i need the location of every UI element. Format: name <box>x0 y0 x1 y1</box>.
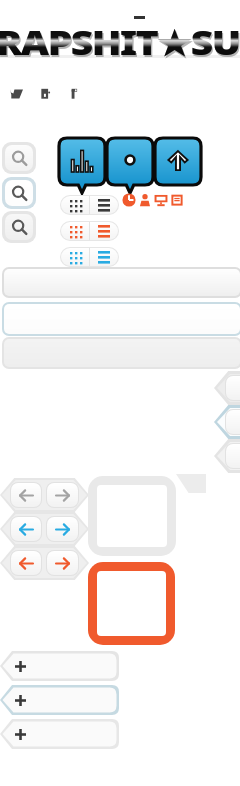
button[interactable]: Upload <box>155 138 201 193</box>
button[interactable]: Text field <box>4 269 240 296</box>
button[interactable]: Time <box>122 193 136 207</box>
button[interactable]: Next <box>47 517 78 541</box>
button[interactable]: Document <box>170 193 184 207</box>
button[interactable]: Facebook <box>68 87 81 100</box>
button[interactable]: Previous <box>11 483 41 507</box>
button[interactable]: Profile <box>138 193 152 207</box>
button[interactable]: Search <box>5 214 33 240</box>
button[interactable]: Navigate <box>214 371 240 405</box>
button[interactable]: Navigate <box>214 405 240 439</box>
button[interactable]: Add tag <box>0 651 119 681</box>
button[interactable]: Grid view <box>61 196 89 214</box>
staticText: RAPSHIT★SU <box>0 21 240 61</box>
button[interactable]: Statistics <box>59 138 105 193</box>
button[interactable]: Next <box>47 551 78 575</box>
button[interactable]: Previous <box>11 517 41 541</box>
button[interactable]: Previous <box>11 551 41 575</box>
button[interactable]: Add tag <box>0 685 119 715</box>
button[interactable]: Next <box>47 483 78 507</box>
button[interactable]: Grid view <box>61 222 89 240</box>
button[interactable]: Grid view <box>61 248 89 266</box>
button[interactable]: Record <box>107 138 153 193</box>
staticText: RAPSHIT★SU <box>0 19 240 59</box>
button[interactable]: List view <box>90 222 118 240</box>
button[interactable]: List view <box>90 196 118 214</box>
button[interactable]: Instagram <box>39 87 52 100</box>
button[interactable]: Navigate <box>214 439 240 473</box>
button[interactable]: Selected option <box>97 571 166 636</box>
button[interactable]: Add tag <box>0 719 119 749</box>
button[interactable]: Search <box>5 180 33 206</box>
button[interactable]: Search <box>5 145 33 171</box>
button[interactable]: List view <box>90 248 118 266</box>
button[interactable]: Chat <box>154 193 168 207</box>
button[interactable]: Twitter <box>10 87 23 100</box>
